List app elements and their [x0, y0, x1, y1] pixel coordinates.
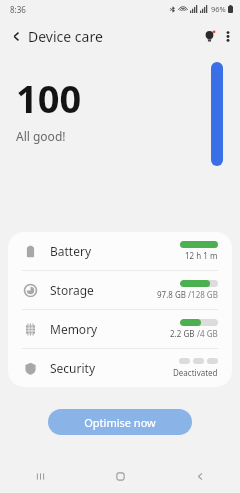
button[interactable]: Storage: [8, 271, 232, 309]
button[interactable]: Battery: [8, 232, 232, 270]
staticText: Deactivated: [173, 367, 218, 378]
staticText: All good!: [16, 128, 66, 144]
staticText: Storage: [50, 282, 94, 298]
button[interactable]: Memory: [8, 310, 232, 348]
staticText: 100: [16, 72, 82, 124]
staticText: /128 GB: [186, 289, 218, 300]
staticText: Optimise now: [84, 415, 156, 430]
staticText: 96%: [211, 4, 226, 14]
staticText: 12 h 1 m: [185, 250, 218, 261]
staticText: 2.2 GB: [170, 328, 195, 339]
staticText: 8:36: [10, 4, 26, 15]
button[interactable]: More options: [222, 24, 240, 49]
staticText: 97.8 GB: [157, 289, 186, 300]
button[interactable]: Back: [160, 459, 240, 493]
staticText: Device care: [28, 27, 103, 46]
staticText: /4 GB: [195, 328, 218, 339]
staticText: Memory: [50, 321, 98, 337]
button[interactable]: Home: [80, 459, 160, 493]
staticText: Battery: [50, 243, 92, 259]
button[interactable]: Back: [0, 24, 27, 49]
button[interactable]: Recents: [0, 459, 80, 493]
button[interactable]: Security: [8, 349, 232, 387]
staticText: Security: [50, 360, 96, 376]
button[interactable]: Optimise now: [48, 409, 192, 435]
button[interactable]: Tips: [197, 24, 222, 49]
